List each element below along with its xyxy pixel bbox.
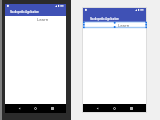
- staticText: Learn: [37, 17, 49, 23]
- button[interactable]: Selected TextView: [82, 21, 148, 30]
- button[interactable]: Recent apps: [50, 106, 55, 111]
- button[interactable]: Back: [17, 106, 22, 111]
- button[interactable]: Recent apps: [129, 106, 134, 111]
- staticText: Learn: [118, 23, 130, 29]
- staticText: Studiopedia Application: [10, 10, 39, 14]
- button[interactable]: Back: [95, 106, 100, 111]
- button[interactable]: Home: [112, 106, 117, 111]
- button[interactable]: Home: [33, 106, 38, 111]
- staticText: Studiopedia Application: [90, 17, 119, 21]
